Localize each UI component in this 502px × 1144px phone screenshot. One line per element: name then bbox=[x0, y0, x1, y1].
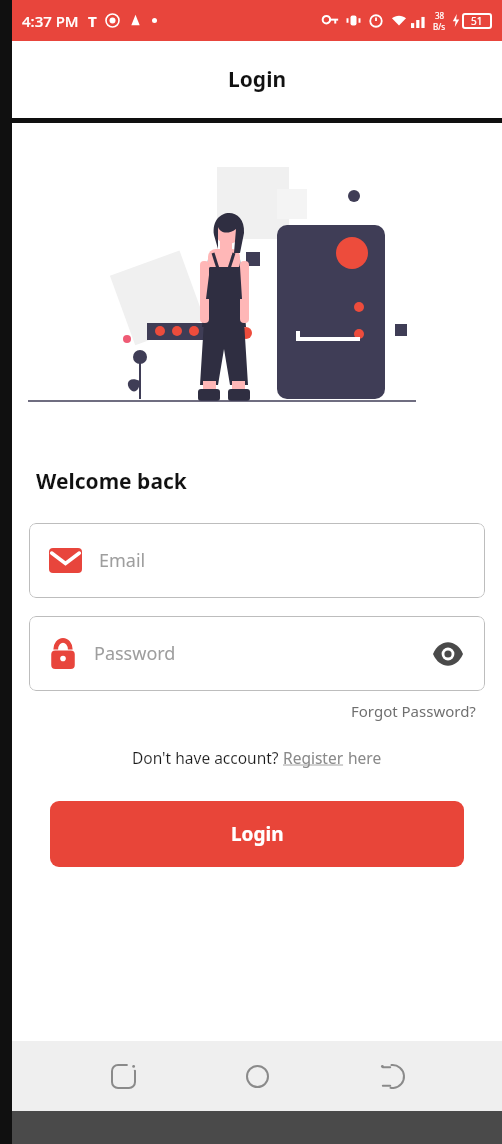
staticText: Don't have account? bbox=[132, 747, 283, 768]
staticText: 4:37 PM bbox=[22, 11, 79, 31]
staticText: Welcome back bbox=[36, 467, 187, 496]
button[interactable]: Password bbox=[29, 616, 485, 691]
button[interactable]: Email bbox=[29, 523, 485, 598]
button[interactable]: Home bbox=[233, 1052, 281, 1100]
staticText: 51 bbox=[471, 14, 483, 28]
button[interactable]: Recents bbox=[99, 1052, 147, 1100]
staticText: B/s bbox=[433, 21, 446, 32]
button[interactable]: Back bbox=[368, 1052, 416, 1100]
staticText: here bbox=[344, 747, 382, 768]
button[interactable]: Login bbox=[50, 801, 464, 867]
staticText: Forgot Password? bbox=[351, 701, 476, 721]
staticText: Login bbox=[228, 65, 287, 94]
button[interactable]: Register bbox=[283, 747, 344, 768]
staticText: 38 bbox=[435, 10, 445, 21]
button[interactable]: Show password bbox=[431, 637, 465, 671]
staticText: T bbox=[88, 11, 97, 31]
staticText: Email bbox=[99, 548, 146, 573]
button[interactable]: Forgot Password? bbox=[351, 701, 476, 721]
staticText: Register bbox=[283, 747, 344, 768]
staticText: Login bbox=[231, 821, 284, 847]
staticText: Password bbox=[94, 641, 176, 666]
